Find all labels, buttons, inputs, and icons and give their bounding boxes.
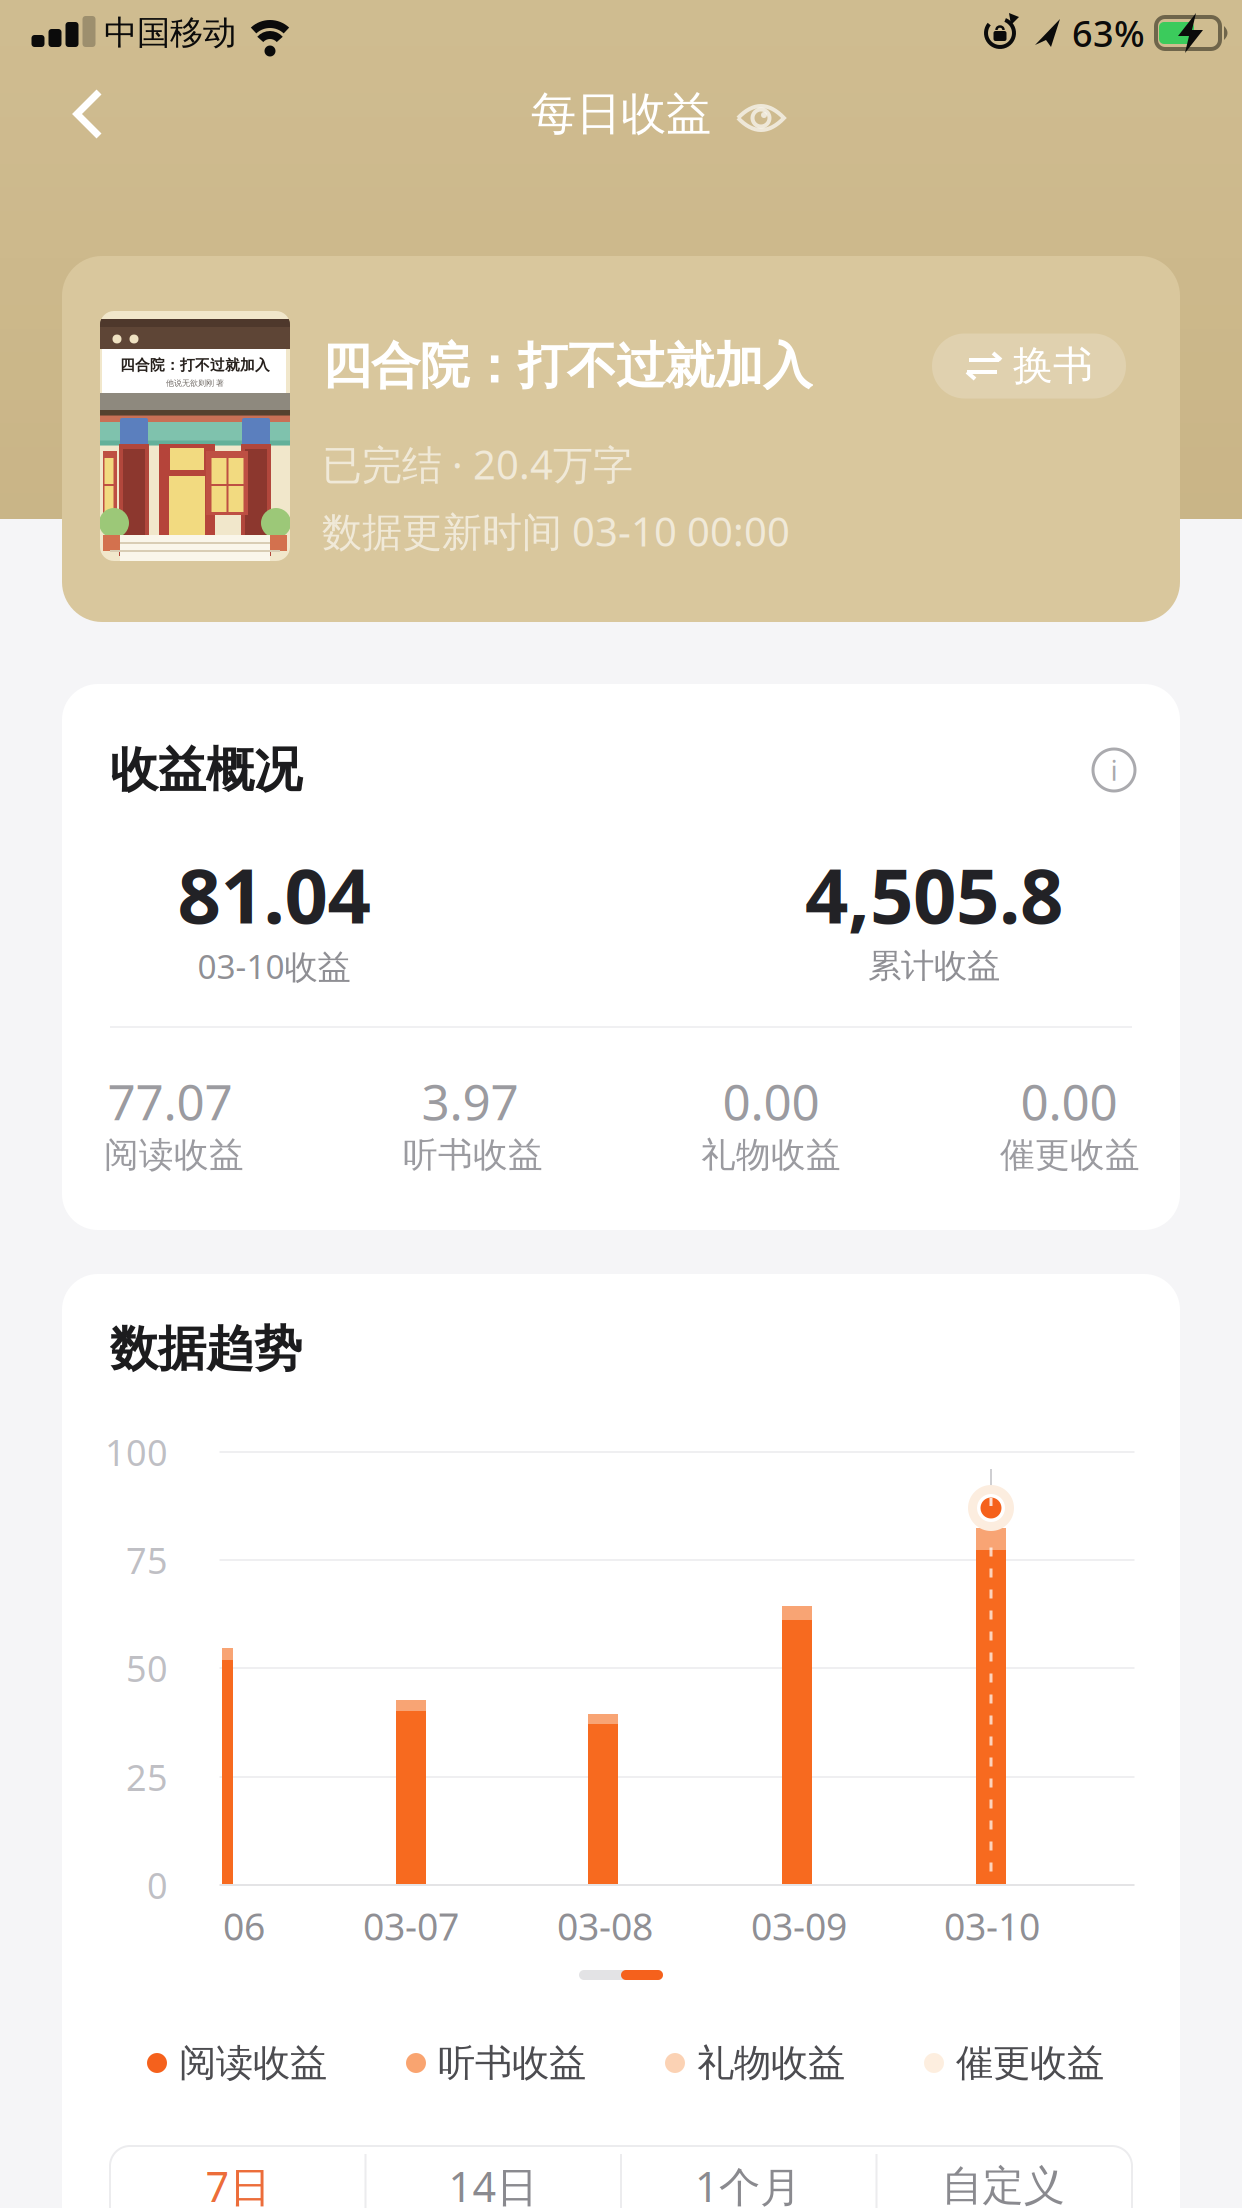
staticText: 礼物收益 xyxy=(697,2040,845,2086)
staticText: 0 xyxy=(147,1861,168,1909)
staticText: 四合院：打不过就加入 xyxy=(120,356,270,374)
staticText: 礼物收益 xyxy=(701,1134,841,1176)
staticText: 06 xyxy=(223,1901,265,1951)
staticText: 0.00 xyxy=(1020,1068,1117,1134)
staticText: 听书收益 xyxy=(403,1134,543,1176)
staticText: 03-09 xyxy=(751,1901,847,1951)
button[interactable]: About earnings xyxy=(1090,746,1138,794)
staticText: 7日 xyxy=(205,2159,270,2208)
button[interactable]: 14日 xyxy=(368,2126,618,2208)
staticText: i xyxy=(1110,751,1117,789)
staticText: 03-08 xyxy=(557,1901,653,1951)
staticText: 催更收益 xyxy=(1000,1134,1140,1176)
staticText: 4,505.8 xyxy=(805,843,1063,944)
staticText: 50 xyxy=(126,1644,168,1692)
button[interactable]: 1个月 xyxy=(623,2126,873,2208)
staticText: 03-10 xyxy=(944,1901,1040,1951)
staticText: 14日 xyxy=(448,2159,537,2208)
button[interactable]: 自定义 xyxy=(878,2126,1128,2208)
staticText: 25 xyxy=(126,1753,168,1801)
staticText: 100 xyxy=(105,1428,168,1476)
staticText: 77.07 xyxy=(107,1068,232,1134)
staticText: 自定义 xyxy=(941,2161,1064,2208)
staticText: 收益概况 xyxy=(110,740,302,799)
staticText: 已完结 · 20.4万字 xyxy=(322,437,633,490)
staticText: 63% xyxy=(1072,9,1145,57)
button[interactable]: 换书 xyxy=(932,333,1126,398)
staticText: 81.04 xyxy=(177,843,370,944)
staticText: 换书 xyxy=(1013,341,1093,390)
staticText: 0.00 xyxy=(722,1068,819,1134)
staticText: 听书收益 xyxy=(438,2040,586,2086)
staticText: 累计收益 xyxy=(868,945,1000,986)
staticText: 他说无欲则刚 著 xyxy=(166,378,224,388)
button[interactable]: Back xyxy=(58,84,118,144)
staticText: 数据更新时间 03-10 00:00 xyxy=(322,504,790,557)
staticText: 催更收益 xyxy=(956,2040,1104,2086)
staticText: 03-10收益 xyxy=(197,944,350,988)
staticText: 中国移动 xyxy=(104,12,236,53)
staticText: 每日收益 xyxy=(531,86,711,142)
staticText: 75 xyxy=(126,1536,168,1584)
staticText: 03-07 xyxy=(363,1901,459,1951)
staticText: 数据趋势 xyxy=(110,1319,302,1378)
staticText: 阅读收益 xyxy=(104,1134,244,1176)
button[interactable]: Hide earnings xyxy=(729,96,793,140)
staticText: 阅读收益 xyxy=(179,2040,327,2086)
staticText: 四合院：打不过就加入 xyxy=(322,336,812,396)
button[interactable]: 7日 xyxy=(113,2126,363,2208)
staticText: 1个月 xyxy=(695,2159,801,2208)
staticText: 3.97 xyxy=(421,1068,518,1134)
